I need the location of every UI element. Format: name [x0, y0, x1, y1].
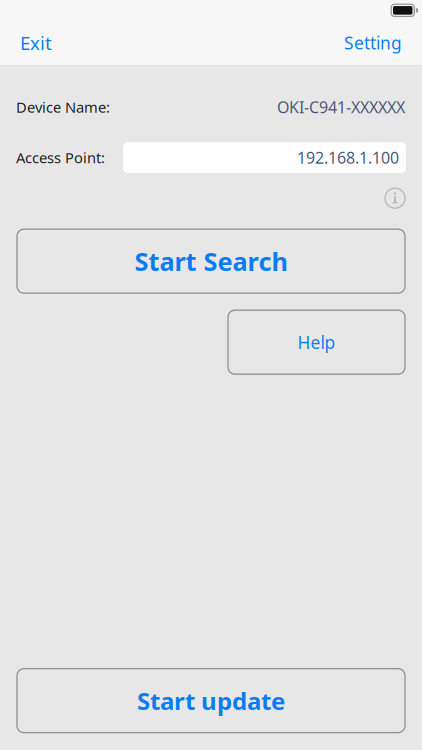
staticText: Device Name:	[16, 97, 110, 117]
staticText: Access Point:	[16, 148, 105, 167]
button[interactable]: Setting	[332, 21, 402, 65]
staticText: Start update	[137, 685, 285, 717]
button[interactable]: Start Search	[17, 229, 405, 293]
staticText: 192.168.1.100	[297, 147, 399, 168]
staticText: Setting	[344, 31, 402, 54]
button[interactable]: Access Point address field	[123, 142, 406, 173]
button[interactable]: Start update	[17, 669, 405, 733]
button[interactable]: Help	[228, 310, 405, 374]
button[interactable]: Exit	[20, 21, 70, 65]
button[interactable]: Information	[380, 183, 410, 213]
staticText: Exit	[20, 30, 52, 55]
staticText: Help	[297, 331, 335, 354]
staticText: OKI-C941-XXXXXX	[277, 96, 405, 118]
staticText: Start Search	[134, 244, 287, 278]
